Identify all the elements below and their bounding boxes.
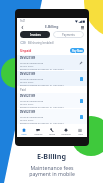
button[interactable]: More options <box>79 24 85 30</box>
staticText: More <box>78 133 83 135</box>
staticText: INV023189 <box>20 72 36 76</box>
staticText: Bill sharing (enabled) <box>28 41 54 45</box>
staticText: Invoices <box>30 33 41 37</box>
staticText: Home <box>21 133 27 135</box>
staticText: 05 Oct 2024 <box>20 64 34 67</box>
button[interactable]: Payments <box>53 31 84 38</box>
staticText: E-Billing <box>45 24 59 29</box>
button[interactable]: Pay Now <box>70 48 84 53</box>
staticText: 05 Oct 2024 <box>20 80 34 83</box>
staticText: Feedback <box>34 133 43 135</box>
button[interactable]: Download invoice <box>78 76 84 82</box>
staticText: Pay Now <box>72 49 83 53</box>
staticText: Balance RM900.00 due on 31 Nov 2024 <box>20 105 64 108</box>
button[interactable]: Download invoice <box>78 98 84 104</box>
button[interactable]: Notification <box>59 126 73 137</box>
button[interactable]: INV023189 <box>17 93 87 108</box>
staticText: Maintenance fees payment in mobile <box>29 164 75 178</box>
staticText: Notification <box>61 133 71 135</box>
staticText: Service Maintenance <box>20 115 44 118</box>
staticText: Payments <box>62 33 75 37</box>
button[interactable]: Bill sharing (enabled) <box>17 40 87 45</box>
staticText: Unpaid <box>20 49 32 53</box>
button[interactable]: Home <box>17 126 31 137</box>
button[interactable]: INV023189 <box>17 55 87 70</box>
staticText: INV023189 <box>20 56 36 60</box>
button[interactable]: Back <box>19 24 25 30</box>
button[interactable]: Feedback <box>31 126 45 137</box>
staticText: Paid <box>20 88 26 92</box>
button[interactable]: INV023189 <box>17 109 87 124</box>
button[interactable]: Download invoice <box>78 114 84 120</box>
staticText: Service <box>49 133 55 135</box>
staticText: Balance RM900.00 due on 31 Nov 2024 <box>20 83 64 86</box>
staticText: INV023189 <box>20 110 36 114</box>
staticText: Balance RM900.00 due on 31 Nov 2024 <box>20 121 64 124</box>
staticText: INV023189 <box>20 94 36 98</box>
staticText: E-Billing <box>37 151 66 161</box>
staticText: Service Maintenance <box>20 99 44 102</box>
button[interactable]: Invoices <box>20 31 50 38</box>
button[interactable]: More <box>73 126 87 137</box>
button[interactable]: Service <box>45 126 59 137</box>
staticText: 05 Oct 2024 <box>20 118 34 121</box>
button[interactable]: INV023189 <box>17 71 87 86</box>
button[interactable]: Edit invoice <box>78 60 84 66</box>
staticText: 05 Oct 2024 <box>20 102 34 105</box>
staticText: 9:41 <box>20 19 26 23</box>
staticText: Service Maintenance <box>20 61 44 64</box>
staticText: Service Maintenance <box>20 77 44 80</box>
staticText: Balance RM900.00 due on 31 Nov 2024 <box>20 67 64 70</box>
